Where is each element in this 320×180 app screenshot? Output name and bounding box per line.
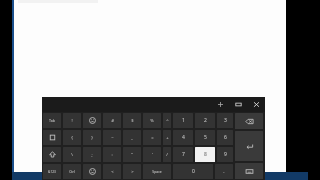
staticText: 1 [182,117,185,124]
staticText: : [111,152,113,158]
staticText: Ctrl [69,169,75,174]
button[interactable]: ^ [163,113,171,128]
button[interactable]: . [215,164,233,179]
button[interactable]: / [163,147,171,162]
staticText: # [111,118,114,124]
button[interactable]: Layout [235,163,263,179]
button[interactable]: 1 [173,113,193,128]
staticText: ' [152,152,153,158]
staticText: ! [71,118,73,124]
button[interactable]: Space [143,164,171,179]
button[interactable]: Emoji [83,113,101,128]
button[interactable]: _ [123,130,141,145]
button[interactable]: Tab [43,113,61,128]
staticText: < [111,169,114,175]
button[interactable]: } [83,130,101,145]
button[interactable]: $ [123,113,141,128]
staticText: } [91,135,93,141]
button[interactable]: < [103,164,121,179]
button[interactable]: ; [83,147,101,162]
button[interactable]: Move [211,97,229,112]
staticText: / [166,152,168,158]
staticText: $ [131,118,134,124]
button[interactable]: + [163,130,171,145]
button[interactable]: Emoji [83,164,101,179]
staticText: 3 [224,117,227,124]
staticText: + [166,135,169,141]
staticText: \ [71,152,73,158]
staticText: _ [131,135,133,141]
button[interactable]: # [103,113,121,128]
staticText: 5 [204,134,207,141]
staticText: 2 [204,117,207,124]
button[interactable]: 4 [173,130,193,145]
button[interactable]: Enter [235,131,263,161]
button[interactable]: ~ [103,130,121,145]
button[interactable]: Backspace [235,113,263,129]
staticText: % [150,118,154,124]
button[interactable]: Shift [43,147,61,162]
staticText: = [151,135,154,141]
button[interactable]: 0 [173,164,213,179]
staticText: > [131,169,134,175]
button[interactable]: &123 [43,164,61,179]
staticText: . [223,168,225,175]
button[interactable]: Minimize [229,97,247,112]
staticText: ^ [166,118,169,124]
button[interactable]: 5 [195,130,215,145]
staticText: &123 [48,170,56,174]
button[interactable]: Ctrl [63,164,81,179]
staticText: ~ [111,135,114,141]
staticText: 9 [224,151,227,158]
button[interactable]: 3 [217,113,233,128]
staticText: ; [91,152,93,158]
button[interactable]: " [123,147,141,162]
button[interactable]: Move [42,97,265,180]
staticText: " [131,152,133,158]
staticText: 6 [224,134,227,141]
staticText: 4 [182,134,185,141]
button[interactable]: 2 [195,113,215,128]
staticText: Space [152,169,162,174]
button[interactable]: \ [63,147,81,162]
button[interactable]: 9 [217,147,233,162]
button[interactable]: 8 [195,147,215,162]
button[interactable]: CapsLock [43,130,61,145]
button[interactable]: % [143,113,161,128]
staticText: { [71,135,73,141]
button[interactable]: > [123,164,141,179]
button[interactable]: 7 [173,147,193,162]
button[interactable]: 6 [217,130,233,145]
button[interactable]: Close [247,97,265,112]
button[interactable]: = [143,130,161,145]
button[interactable]: { [63,130,81,145]
staticText: 8 [204,151,207,158]
button[interactable]: ! [63,113,81,128]
staticText: 0 [192,168,195,175]
button[interactable]: ' [143,147,161,162]
staticText: Tab [49,118,55,123]
staticText: 7 [182,151,185,158]
